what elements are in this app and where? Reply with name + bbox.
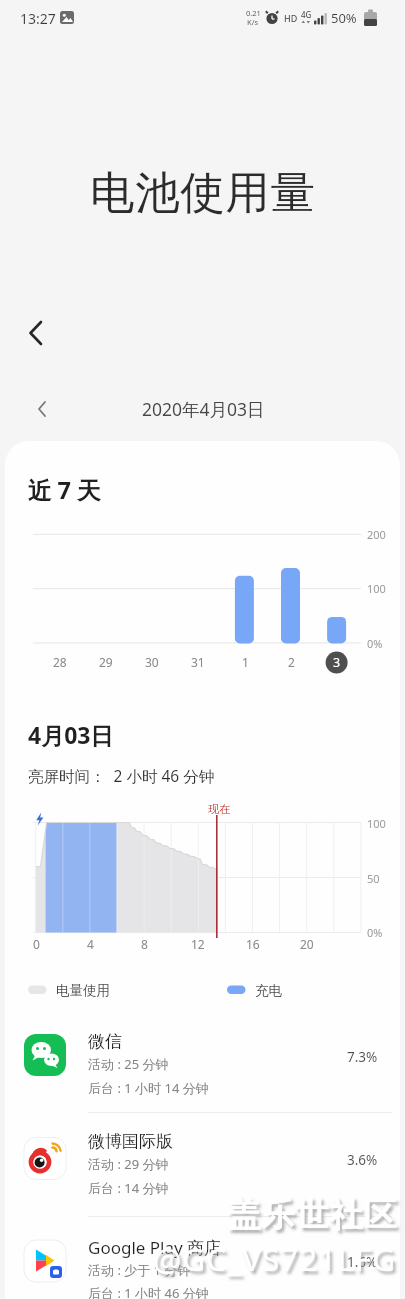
staticText: 28 [53, 654, 67, 670]
staticText: 微信 [88, 1031, 122, 1052]
staticText: 29 [99, 654, 113, 670]
staticText: 活动 : 25 分钟 [88, 1055, 169, 1073]
staticText: 16 [246, 936, 260, 952]
staticText: 0% [367, 636, 383, 651]
staticText: 8 [141, 936, 148, 952]
staticText: 12 [191, 936, 205, 952]
staticText: 100 [367, 581, 386, 596]
staticText: 4月03日 [28, 719, 114, 750]
staticText: 现在 [208, 802, 230, 816]
staticText: 50 [367, 871, 380, 886]
staticText: @GC_VS721LFG [153, 1237, 397, 1280]
staticText: 微博国际版 [88, 1131, 173, 1152]
staticText: 3 [333, 654, 341, 671]
staticText: 4 [87, 936, 94, 952]
staticText: 0.21 [246, 8, 261, 18]
staticText: HD [284, 12, 298, 24]
staticText: 3.6% [347, 1151, 378, 1169]
staticText: 0 [33, 936, 40, 952]
staticText: 2 [288, 654, 295, 670]
staticText: 30 [145, 654, 159, 670]
staticText: Google Play 商店 [88, 1236, 222, 1259]
staticText: 电量使用 [56, 982, 110, 999]
staticText: 活动 : 少于 1 分钟 [88, 1261, 191, 1279]
staticText: 后台 : 1 小时 46 分钟 [88, 1284, 209, 1299]
staticText: 亮屏时间： 2 小时 46 分钟 [28, 765, 215, 786]
staticText: 2020年4月03日 [142, 397, 265, 421]
staticText: 电池使用量 [90, 165, 315, 221]
staticText: 充电 [255, 982, 282, 999]
staticText: 后台 : 1 小时 14 分钟 [88, 1079, 209, 1097]
staticText: 4G [301, 9, 312, 20]
staticText: 1 [242, 654, 249, 670]
staticText: 7.3% [347, 1048, 378, 1066]
staticText: 20 [300, 936, 314, 952]
staticText: 0% [367, 925, 383, 940]
staticText: 50% [331, 9, 357, 27]
staticText: 200 [367, 527, 386, 542]
staticText: K/s [247, 17, 259, 27]
staticText: 后台 : 14 分钟 [88, 1179, 169, 1197]
staticText: 100 [367, 816, 386, 831]
staticText: 近 7 天 [28, 474, 101, 506]
staticText: 盖乐世社区 [227, 1194, 397, 1236]
staticText: 1.6% [347, 1253, 378, 1271]
staticText: 13:27 [20, 9, 56, 28]
staticText: 活动 : 29 分钟 [88, 1155, 169, 1173]
staticText: 31 [191, 654, 205, 670]
